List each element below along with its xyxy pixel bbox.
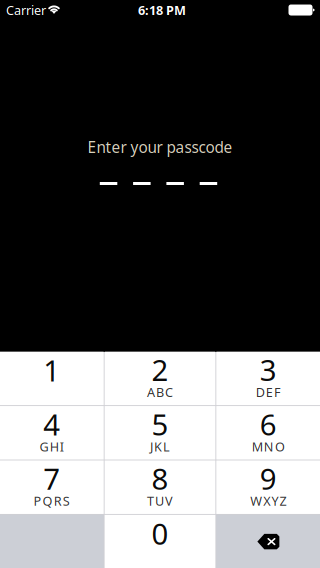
staticText: 1 — [43, 350, 60, 390]
staticText: TUV — [147, 492, 173, 510]
button[interactable]: 5 — [105, 406, 215, 459]
staticText: Carrier — [6, 1, 46, 19]
staticText: 9 — [260, 458, 277, 498]
button[interactable]: 4 — [0, 406, 104, 459]
button[interactable]: 6 — [216, 406, 320, 459]
staticText: 8 — [151, 458, 168, 498]
staticText: JKL — [150, 438, 170, 455]
staticText: PQRS — [33, 492, 70, 510]
button[interactable]: 9 — [216, 460, 320, 514]
staticText: WXYZ — [250, 492, 286, 510]
button[interactable]: 2 — [105, 352, 215, 405]
staticText: 2 — [151, 350, 168, 390]
staticText: ABC — [147, 383, 173, 401]
staticText: Enter your passcode — [87, 137, 232, 157]
staticText: GHI — [40, 438, 64, 455]
button[interactable]: Delete — [216, 515, 320, 568]
staticText: 7 — [43, 458, 60, 498]
staticText: 4 — [43, 404, 60, 444]
staticText: 6:18 PM — [138, 1, 186, 19]
button[interactable]: 7 — [0, 460, 104, 514]
staticText: 6 — [260, 404, 277, 444]
staticText: DEF — [256, 383, 281, 401]
staticText: 3 — [260, 350, 277, 390]
staticText: 5 — [151, 404, 168, 444]
staticText: MNO — [252, 438, 285, 455]
button[interactable]: 3 — [216, 352, 320, 405]
button[interactable]: 1 — [0, 352, 104, 405]
staticText: 0 — [151, 513, 168, 553]
button[interactable]: 8 — [105, 460, 215, 514]
button[interactable]: 0 — [105, 515, 215, 568]
